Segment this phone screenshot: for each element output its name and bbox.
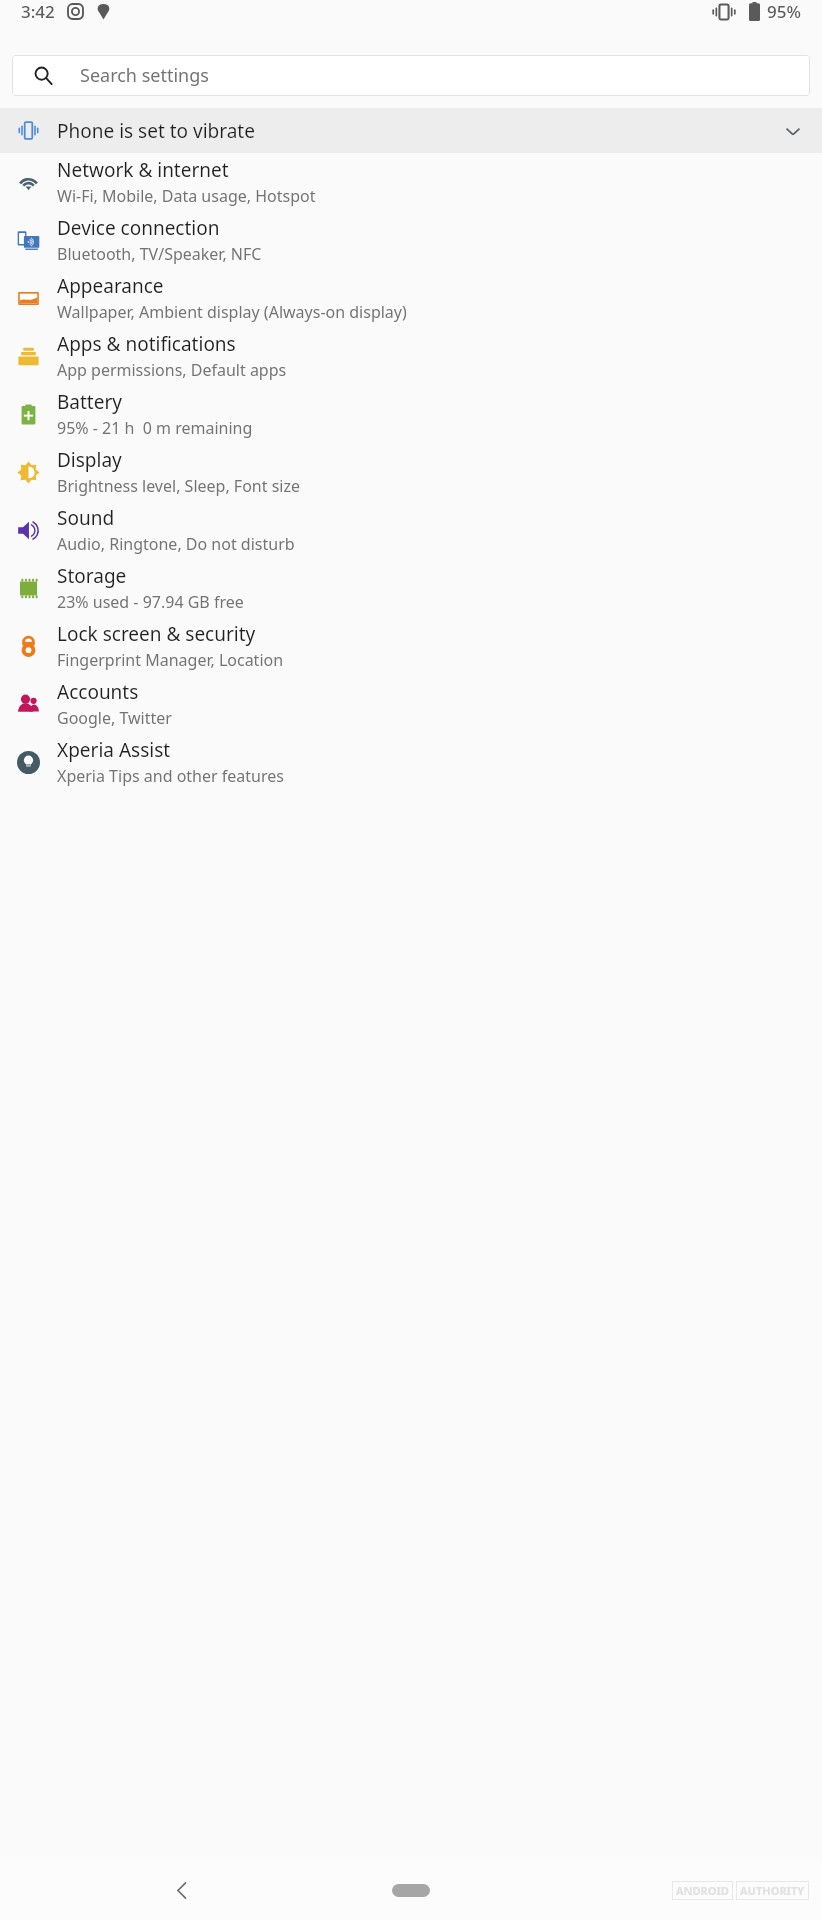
staticText: Lock screen & security	[57, 621, 256, 647]
staticText: Search settings	[80, 63, 209, 88]
button[interactable]: Network & internet	[0, 153, 822, 211]
button[interactable]: Lock screen & security	[0, 617, 822, 675]
button[interactable]: Device connection	[0, 211, 822, 269]
staticText: 3:42	[21, 0, 55, 23]
staticText: Audio, Ringtone, Do not disturb	[57, 533, 295, 555]
button[interactable]: Search settings	[12, 55, 810, 96]
staticText: 95% - 21 h 0 m remaining	[57, 417, 253, 439]
button[interactable]: Storage	[0, 559, 822, 617]
staticText: Sound	[57, 505, 115, 531]
staticText: Storage	[57, 563, 127, 589]
staticText: Phone is set to vibrate	[57, 118, 255, 144]
staticText: App permissions, Default apps	[57, 359, 287, 381]
staticText: Xperia Tips and other features	[57, 765, 284, 787]
staticText: Xperia Assist	[57, 737, 171, 763]
button[interactable]: Home	[383, 1875, 439, 1905]
button[interactable]: Display	[0, 443, 822, 501]
staticText: Wallpaper, Ambient display (Always-on di…	[57, 301, 407, 323]
staticText: Fingerprint Manager, Location	[57, 649, 284, 671]
staticText: Google, Twitter	[57, 707, 172, 729]
button[interactable]: Accounts	[0, 675, 822, 733]
button[interactable]: Apps & notifications	[0, 327, 822, 385]
staticText: Battery	[57, 389, 122, 415]
staticText: 23% used - 97.94 GB free	[57, 591, 244, 613]
staticText: ANDROID	[676, 1883, 729, 1898]
button[interactable]: Sound	[0, 501, 822, 559]
button[interactable]: Appearance	[0, 269, 822, 327]
staticText: Network & internet	[57, 157, 229, 183]
staticText: Appearance	[57, 273, 164, 299]
staticText: Accounts	[57, 679, 139, 705]
staticText: Bluetooth, TV/Speaker, NFC	[57, 243, 262, 265]
staticText: AUTHORITY	[740, 1883, 805, 1898]
button[interactable]: Phone is set to vibrate	[0, 108, 822, 153]
button[interactable]: Xperia Assist	[0, 733, 822, 791]
staticText: 95%	[767, 0, 801, 23]
staticText: Apps & notifications	[57, 331, 236, 357]
staticText: Display	[57, 447, 122, 473]
staticText: Device connection	[57, 215, 220, 241]
button[interactable]: Back	[160, 1868, 204, 1912]
staticText: Wi-Fi, Mobile, Data usage, Hotspot	[57, 185, 316, 207]
staticText: Brightness level, Sleep, Font size	[57, 475, 300, 497]
button[interactable]: Battery	[0, 385, 822, 443]
